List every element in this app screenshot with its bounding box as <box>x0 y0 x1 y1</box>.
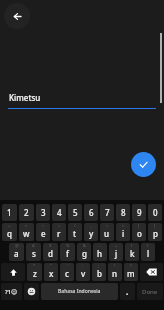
button[interactable]: " <box>44 263 58 281</box>
button[interactable]: @ <box>9 243 24 261</box>
button[interactable]: # <box>26 243 41 261</box>
button[interactable]: × <box>19 223 34 241</box>
staticText: r <box>57 228 61 239</box>
button[interactable]: Bahasa Indonesia <box>41 283 118 300</box>
staticText: t <box>73 228 77 239</box>
button[interactable]: 2 <box>19 204 34 221</box>
button[interactable]: Emoji <box>24 283 39 300</box>
button[interactable]: = <box>52 223 66 241</box>
staticText: * <box>33 263 36 268</box>
button[interactable]: 4 <box>52 204 66 221</box>
button[interactable]: * <box>27 263 42 281</box>
staticText: z <box>33 268 37 279</box>
staticText: ] <box>154 223 156 228</box>
staticText: Bahasa Indonesia <box>58 288 101 295</box>
button[interactable]: > <box>116 223 130 241</box>
button[interactable]: < <box>100 223 114 241</box>
staticText: g <box>82 248 87 259</box>
staticText: Done <box>142 288 158 296</box>
button[interactable]: / <box>68 223 82 241</box>
staticText: / <box>74 223 76 228</box>
button[interactable]: _ <box>84 223 98 241</box>
button[interactable]: ; <box>92 263 106 281</box>
staticText: p <box>153 228 158 239</box>
staticText: + <box>115 243 118 248</box>
staticText: d <box>48 248 53 259</box>
staticText: q <box>7 228 12 239</box>
staticText: ) <box>147 243 149 248</box>
staticText: i <box>122 228 125 239</box>
staticText: ?1☺ <box>5 288 18 296</box>
staticText: # <box>32 243 35 248</box>
staticText: k <box>130 248 135 259</box>
button[interactable]: 5 <box>68 204 82 221</box>
staticText: u <box>104 228 110 239</box>
staticText: v <box>81 268 86 279</box>
button[interactable]: ÷ <box>36 223 50 241</box>
staticText: : <box>82 263 84 268</box>
button[interactable]: . <box>120 283 135 300</box>
staticText: 2 <box>24 207 29 218</box>
staticText: f <box>66 248 69 259</box>
staticText: + <box>8 223 11 228</box>
button[interactable]: & <box>77 243 91 261</box>
staticText: Kimetsu <box>9 92 41 103</box>
staticText: " <box>50 263 52 268</box>
button[interactable]: % <box>60 243 75 261</box>
button[interactable]: Done <box>137 283 163 300</box>
button[interactable]: + <box>2 223 17 241</box>
staticText: o <box>137 228 142 239</box>
button[interactable]: 9 <box>132 204 146 221</box>
button[interactable]: 3 <box>36 204 50 221</box>
staticText: s <box>32 248 36 259</box>
staticText: c <box>65 268 69 279</box>
button[interactable]: Confirm <box>131 152 156 177</box>
button[interactable]: Shift <box>1 263 25 281</box>
button[interactable]: ' <box>60 263 74 281</box>
button[interactable]: : <box>76 263 90 281</box>
staticText: 7 <box>105 207 110 218</box>
staticText: 4 <box>57 207 62 218</box>
staticText: 6 <box>89 207 94 218</box>
staticText: a <box>14 248 19 259</box>
button[interactable]: ? <box>124 263 138 281</box>
staticText: 5 <box>73 207 78 218</box>
staticText: x <box>49 268 54 279</box>
staticText: l <box>147 248 150 259</box>
button[interactable]: ?1☺ <box>1 283 22 300</box>
staticText: 0 <box>153 207 158 218</box>
staticText: w <box>23 228 30 239</box>
staticText: ' <box>67 263 68 268</box>
staticText: ; <box>98 263 100 268</box>
button[interactable]: 1 <box>2 204 17 221</box>
staticText: > <box>122 223 125 228</box>
button[interactable]: - <box>93 243 107 261</box>
button[interactable]: 0 <box>148 204 162 221</box>
staticText: . <box>126 286 129 297</box>
button[interactable]: $ <box>43 243 58 261</box>
button[interactable]: 7 <box>100 204 114 221</box>
staticText: ! <box>114 263 116 268</box>
button[interactable]: + <box>109 243 123 261</box>
staticText: y <box>89 228 94 239</box>
button[interactable]: Back <box>4 3 30 29</box>
staticText: @ <box>15 243 19 248</box>
staticText: < <box>106 223 109 228</box>
button[interactable]: ! <box>108 263 122 281</box>
staticText: n <box>112 268 118 279</box>
button[interactable]: ] <box>148 223 162 241</box>
button[interactable]: 6 <box>84 204 98 221</box>
staticText: & <box>83 243 86 248</box>
button[interactable]: [ <box>132 223 146 241</box>
staticText: ( <box>131 243 133 248</box>
staticText: 9 <box>137 207 142 218</box>
staticText: e <box>41 228 46 239</box>
button[interactable]: Backspace <box>140 263 163 281</box>
staticText: 3 <box>41 207 46 218</box>
button[interactable]: ( <box>125 243 139 261</box>
staticText: h <box>97 248 103 259</box>
staticText: % <box>66 243 70 248</box>
staticText: × <box>25 223 28 228</box>
button[interactable]: 8 <box>116 204 130 221</box>
button[interactable]: ) <box>141 243 155 261</box>
